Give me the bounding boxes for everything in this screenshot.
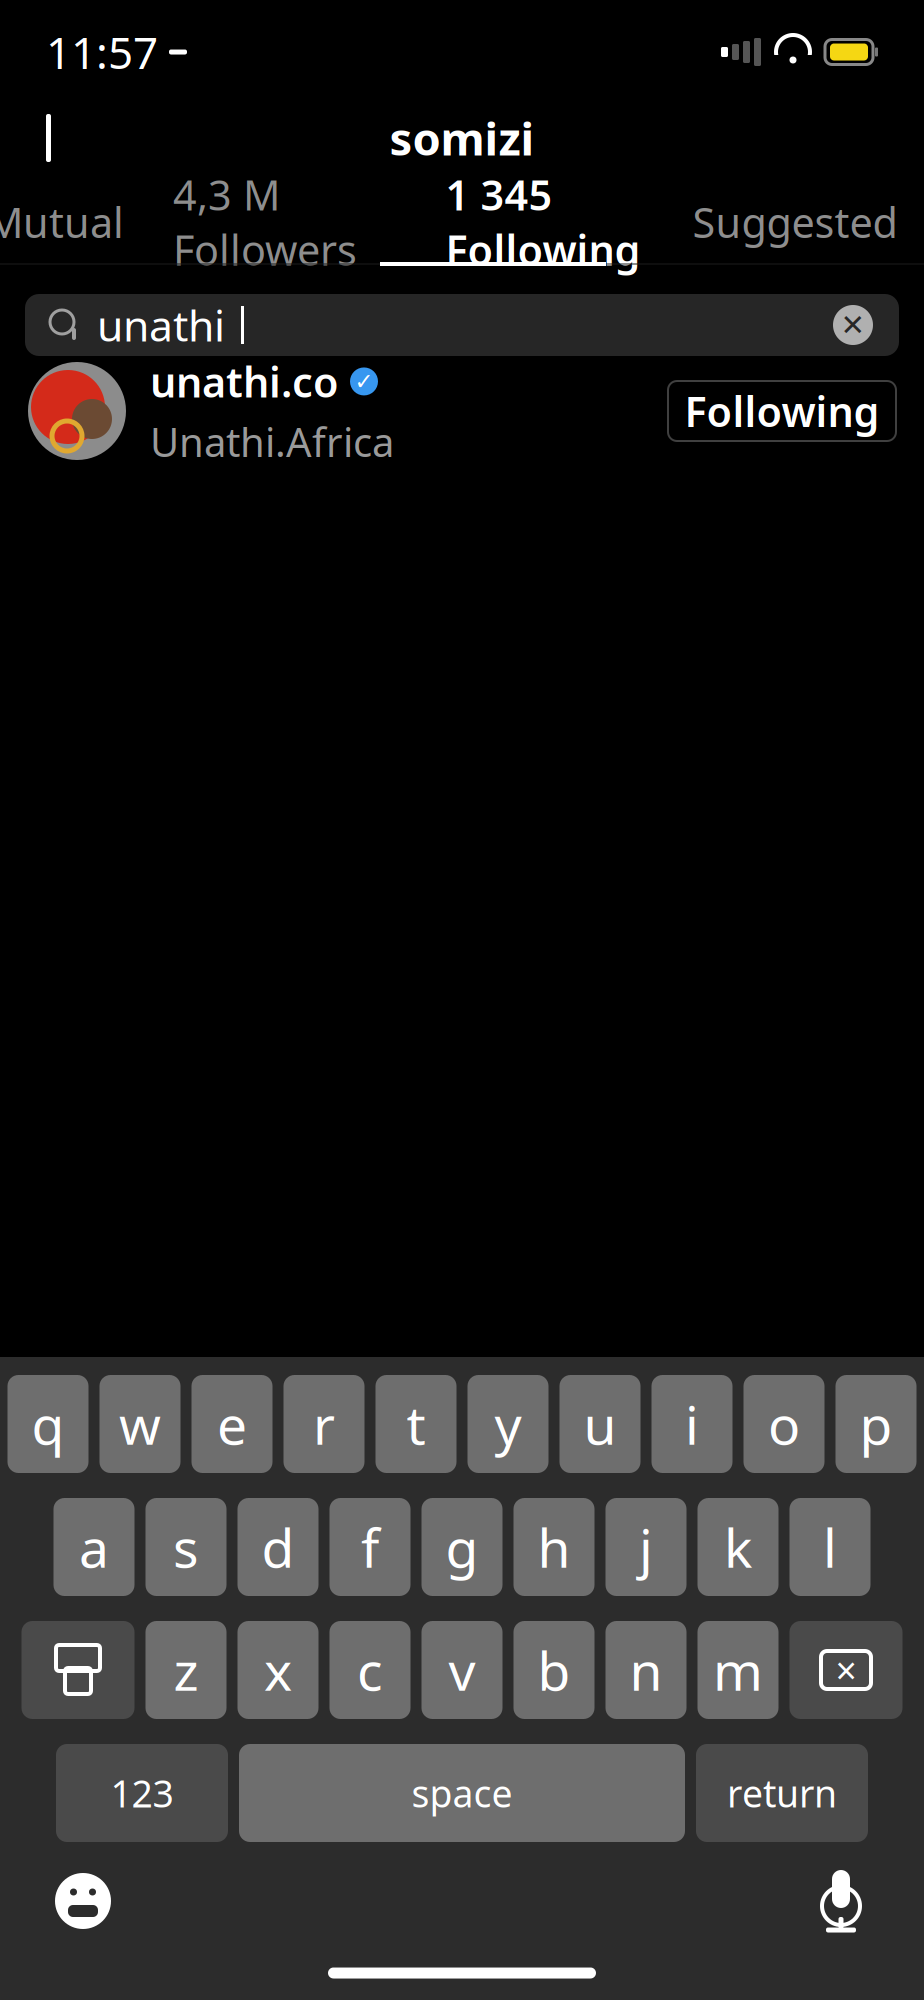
staticText: Mutual xyxy=(0,195,124,249)
button[interactable]: 4,3 M Followers xyxy=(130,182,400,262)
staticText: o xyxy=(768,1389,800,1459)
staticText: w xyxy=(119,1389,161,1459)
staticText: return xyxy=(727,1768,837,1818)
button[interactable]: Clear search xyxy=(831,303,875,347)
button[interactable]: space xyxy=(239,1744,685,1842)
staticText: d xyxy=(261,1512,294,1582)
staticText: q xyxy=(31,1389,64,1459)
staticText: g xyxy=(445,1512,478,1582)
button[interactable]: c xyxy=(329,1621,410,1719)
button[interactable]: g xyxy=(421,1498,502,1596)
button[interactable]: Suggested xyxy=(686,182,904,262)
staticText: m xyxy=(713,1635,763,1705)
button[interactable]: return xyxy=(696,1744,868,1842)
button[interactable]: unathi.co xyxy=(0,356,924,466)
button[interactable]: r xyxy=(283,1375,364,1473)
button[interactable]: t xyxy=(375,1375,456,1473)
button[interactable]: n xyxy=(605,1621,686,1719)
button[interactable]: a xyxy=(53,1498,134,1596)
button[interactable]: Key xyxy=(789,1621,902,1719)
staticText: l xyxy=(823,1512,837,1582)
button[interactable]: Mutual xyxy=(0,182,130,262)
button[interactable]: f xyxy=(329,1498,410,1596)
staticText: b xyxy=(537,1635,570,1705)
staticText: y xyxy=(494,1389,521,1459)
staticText: i xyxy=(685,1389,699,1459)
staticText: Unathi.Africa xyxy=(150,415,394,468)
button[interactable]: w xyxy=(99,1375,180,1473)
staticText: × xyxy=(835,1645,856,1695)
staticText: unathi.co xyxy=(150,354,339,409)
staticText: Following xyxy=(684,384,879,438)
button[interactable]: e xyxy=(191,1375,272,1473)
staticText: n xyxy=(629,1635,662,1705)
staticText: ✓ xyxy=(354,369,373,394)
staticText: f xyxy=(361,1512,379,1582)
staticText: 123 xyxy=(110,1768,173,1818)
staticText: r xyxy=(313,1389,335,1459)
button[interactable]: k xyxy=(697,1498,778,1596)
staticText: unathi xyxy=(97,297,225,353)
staticText: s xyxy=(173,1512,199,1582)
staticText: somizi xyxy=(389,108,534,168)
staticText: z xyxy=(173,1635,198,1705)
staticText: u xyxy=(583,1389,616,1459)
staticText: 4,3 M Followers xyxy=(173,167,357,277)
button[interactable]: 123 xyxy=(56,1744,228,1842)
button[interactable]: Following xyxy=(668,381,896,441)
button[interactable]: u xyxy=(559,1375,640,1473)
staticText: e xyxy=(217,1389,247,1459)
staticText: k xyxy=(724,1512,752,1582)
staticText: j xyxy=(639,1512,653,1582)
staticText: x xyxy=(264,1635,292,1705)
button[interactable]: Back xyxy=(20,103,90,173)
button[interactable]: l xyxy=(789,1498,870,1596)
staticText: 11:57 xyxy=(46,23,158,81)
button[interactable]: b xyxy=(513,1621,594,1719)
button[interactable]: s xyxy=(145,1498,226,1596)
button[interactable]: m xyxy=(697,1621,778,1719)
staticText: Suggested xyxy=(692,195,897,249)
button[interactable]: o xyxy=(743,1375,824,1473)
button[interactable]: d xyxy=(237,1498,318,1596)
button[interactable]: 1 345 Following xyxy=(400,182,686,262)
staticText: 1 345 Following xyxy=(445,167,640,277)
button[interactable]: z xyxy=(145,1621,226,1719)
button[interactable]: h xyxy=(513,1498,594,1596)
staticText: t xyxy=(406,1389,425,1459)
staticText: c xyxy=(357,1635,383,1705)
button[interactable]: q xyxy=(7,1375,88,1473)
button[interactable]: x xyxy=(237,1621,318,1719)
button[interactable]: Dictation xyxy=(796,1856,886,1946)
button[interactable]: i xyxy=(651,1375,732,1473)
staticText: h xyxy=(537,1512,570,1582)
button[interactable]: p xyxy=(835,1375,916,1473)
button[interactable]: Key xyxy=(21,1621,134,1719)
button[interactable]: j xyxy=(605,1498,686,1596)
button[interactable]: v xyxy=(421,1621,502,1719)
staticText: ✕ xyxy=(840,308,865,342)
button[interactable]: y xyxy=(467,1375,548,1473)
button[interactable]: Emoji keyboard xyxy=(38,1856,128,1946)
staticText: p xyxy=(859,1389,892,1459)
staticText: v xyxy=(448,1635,475,1705)
staticText: space xyxy=(411,1768,512,1818)
staticText: a xyxy=(79,1512,109,1582)
